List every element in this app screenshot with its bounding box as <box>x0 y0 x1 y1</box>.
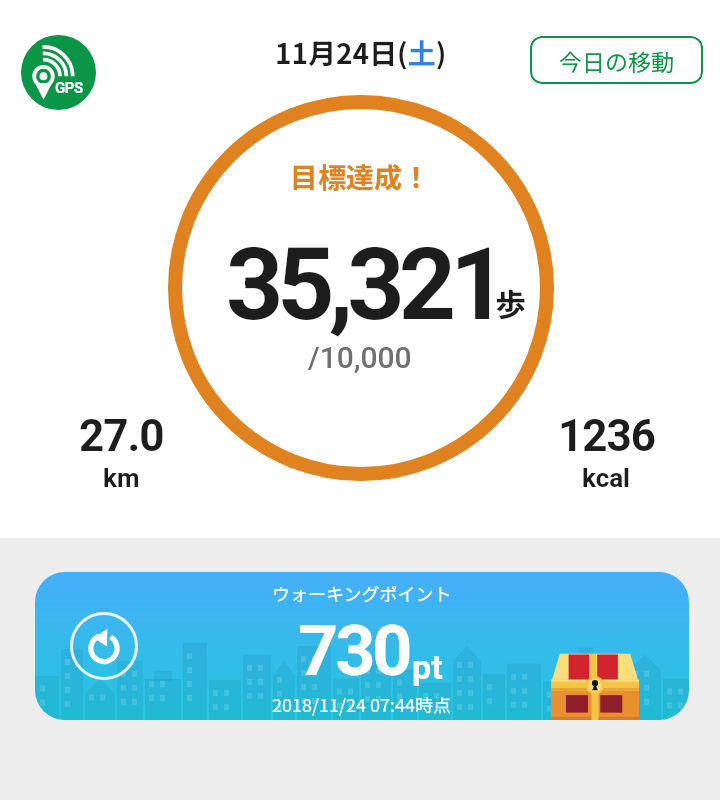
staticText: 35,321 <box>226 226 502 343</box>
button[interactable]: Refresh <box>70 612 138 680</box>
staticText: 今日の移動 <box>559 44 674 77</box>
staticText: /10,000 <box>308 340 412 375</box>
staticText: 目標達成！ <box>290 156 431 197</box>
button[interactable]: GPS <box>21 35 96 110</box>
staticText: 27.0 <box>79 410 164 462</box>
staticText: kcal <box>582 463 630 493</box>
staticText: 1236 <box>558 410 655 462</box>
staticText: 歩 <box>495 280 526 325</box>
button[interactable]: Refresh <box>35 572 689 720</box>
staticText: km <box>103 463 140 493</box>
button[interactable]: 今日の移動 <box>530 36 703 84</box>
staticText: GPS <box>55 79 83 97</box>
staticText: 11月24日(土) <box>275 32 447 73</box>
staticText: 730 <box>298 610 410 692</box>
staticText: ウォーキングポイント <box>272 580 452 606</box>
staticText: 2018/11/24 07:44時点 <box>272 691 452 717</box>
staticText: pt <box>412 647 443 687</box>
